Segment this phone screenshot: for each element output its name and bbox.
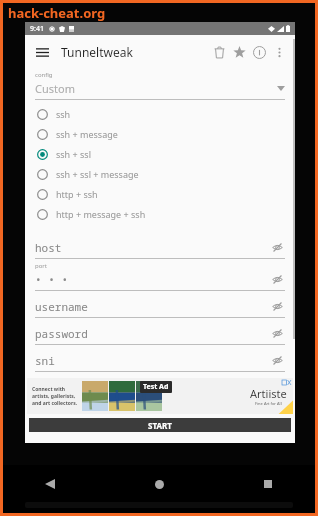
button[interactable]: Toggle visibility: [269, 271, 285, 287]
button[interactable]: Favorite: [229, 42, 249, 62]
staticText: Artiiste: [250, 386, 287, 401]
button[interactable]: Delete: [209, 42, 229, 62]
staticText: http + ssh: [56, 188, 98, 200]
button[interactable]: Toggle visibility: [269, 325, 285, 341]
staticText: port: [35, 262, 47, 270]
button[interactable]: config: [25, 69, 295, 100]
button[interactable]: username: [25, 291, 295, 318]
staticText: artists, gallerists,: [32, 393, 76, 400]
button[interactable]: ssh + message: [37, 124, 295, 144]
staticText: START: [148, 420, 172, 431]
button[interactable]: Menu: [31, 41, 53, 63]
button[interactable]: ssh: [37, 104, 295, 124]
staticText: ssh: [56, 108, 71, 120]
staticText: Fine Art for All: [255, 401, 282, 406]
staticText: Custom: [35, 81, 75, 96]
button[interactable]: http + ssh: [37, 184, 295, 204]
staticText: config: [35, 71, 53, 79]
button[interactable]: Back: [37, 471, 63, 497]
button[interactable]: Toggle visibility: [269, 352, 285, 368]
button[interactable]: Toggle visibility: [269, 298, 285, 314]
staticText: ssh + ssl: [56, 148, 91, 160]
button[interactable]: sni: [25, 345, 295, 372]
button[interactable]: Toggle visibility: [269, 239, 285, 255]
staticText: password: [35, 326, 88, 341]
button[interactable]: Recent apps: [255, 471, 281, 497]
staticText: hack-cheat.org: [8, 4, 106, 22]
staticText: ssh + message: [56, 128, 118, 140]
staticText: sni: [35, 353, 55, 368]
staticText: http + message + ssh: [56, 208, 146, 220]
staticText: ssh + ssl + message: [56, 168, 139, 180]
staticText: host: [35, 240, 62, 255]
staticText: Tunneltweak: [61, 44, 133, 60]
staticText: Connect with: [32, 386, 66, 393]
button[interactable]: Info: [249, 42, 269, 62]
button[interactable]: password: [25, 318, 295, 345]
button[interactable]: ssh + ssl: [37, 144, 295, 164]
button[interactable]: port: [25, 259, 295, 291]
button[interactable]: More options: [269, 42, 289, 62]
staticText: 9:41: [30, 24, 44, 34]
button[interactable]: Home: [146, 471, 172, 497]
button[interactable]: http + message + ssh: [37, 204, 295, 224]
staticText: • • •: [35, 272, 68, 287]
button[interactable]: START: [29, 418, 291, 432]
button[interactable]: Advertisement: [27, 378, 293, 414]
staticText: username: [35, 299, 88, 314]
button[interactable]: host: [25, 232, 295, 259]
staticText: Test Ad: [143, 382, 169, 392]
button[interactable]: ssh + ssl + message: [37, 164, 295, 184]
staticText: and art collectors.: [32, 400, 78, 407]
